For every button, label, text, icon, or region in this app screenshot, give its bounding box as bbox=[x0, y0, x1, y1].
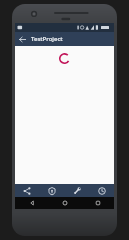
button[interactable]: Recents bbox=[81, 197, 114, 209]
button[interactable]: Navigate up bbox=[17, 34, 28, 45]
button[interactable]: History bbox=[89, 184, 114, 197]
staticText: TestProject bbox=[31, 35, 63, 43]
button[interactable]: Security bbox=[39, 184, 64, 197]
button[interactable]: Share bbox=[15, 184, 39, 197]
button[interactable]: Back bbox=[15, 197, 48, 209]
button[interactable]: Tools bbox=[64, 184, 89, 197]
button[interactable]: Home bbox=[48, 197, 81, 209]
